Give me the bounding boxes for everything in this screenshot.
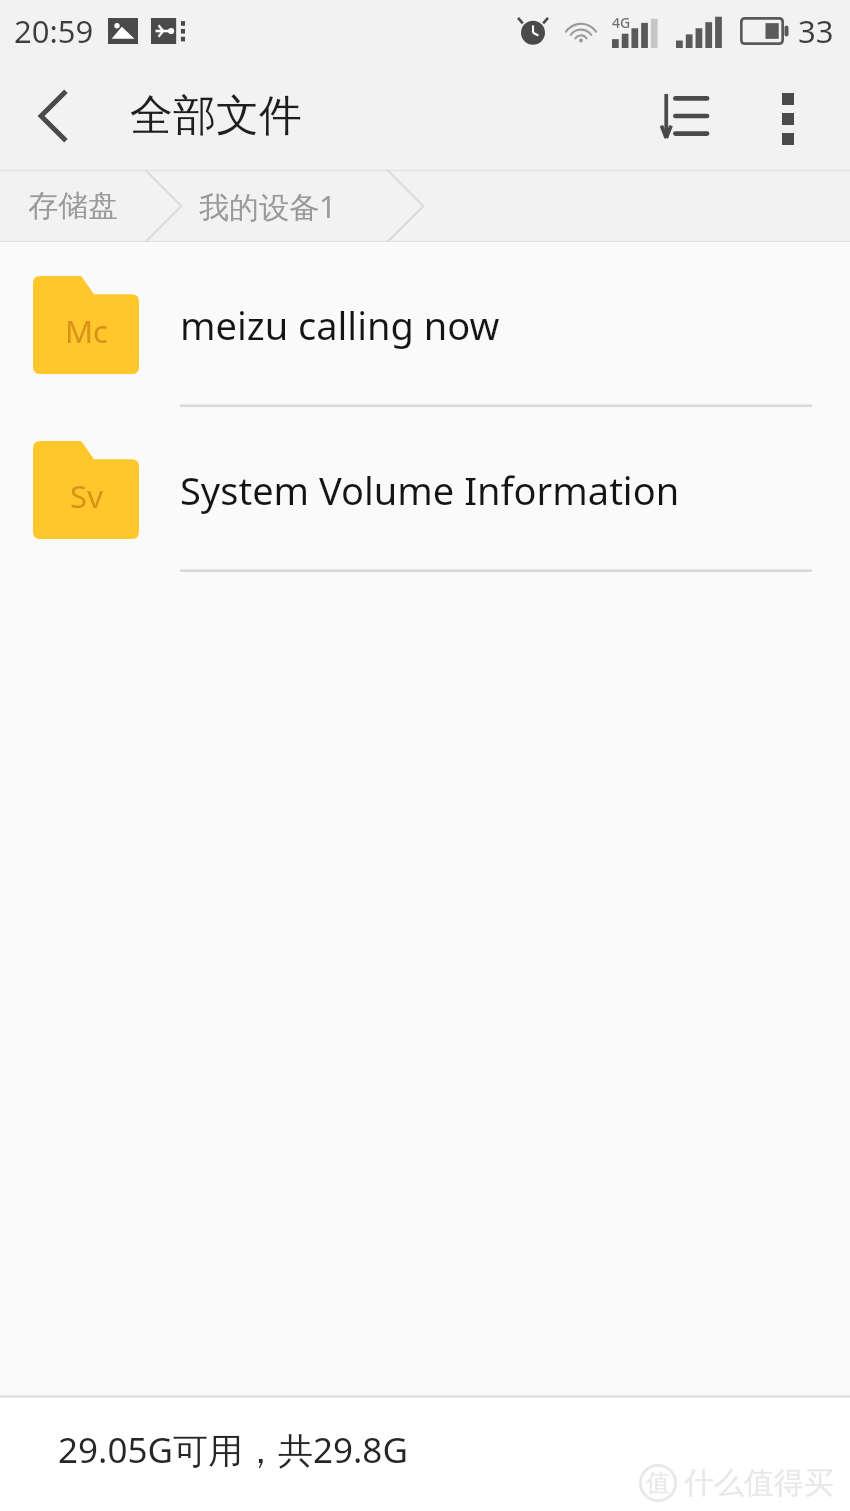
staticText: 值	[646, 1468, 670, 1498]
staticText: Sv	[70, 475, 103, 517]
staticText: 33	[798, 10, 834, 52]
button[interactable]: Mc	[0, 242, 850, 407]
button[interactable]: 我的设备1	[145, 170, 390, 242]
staticText: 我的设备1	[199, 186, 337, 227]
staticText: meizu calling now	[180, 299, 500, 351]
staticText: 全部文件	[130, 89, 302, 143]
button[interactable]: Sv	[0, 407, 850, 572]
staticText: Mc	[65, 310, 108, 352]
staticText: 29.05G可用，共29.8G	[58, 1426, 408, 1474]
staticText: System Volume Information	[180, 464, 680, 516]
staticText: 什么值得买	[684, 1464, 834, 1502]
staticText: 4G	[612, 13, 631, 32]
button[interactable]: Back	[0, 62, 108, 170]
staticText: 存储盘	[28, 187, 118, 225]
button[interactable]: More options	[736, 64, 840, 168]
staticText: 20:59	[14, 10, 94, 52]
button[interactable]: 存储盘	[0, 170, 145, 242]
button[interactable]: Sort	[632, 64, 736, 168]
